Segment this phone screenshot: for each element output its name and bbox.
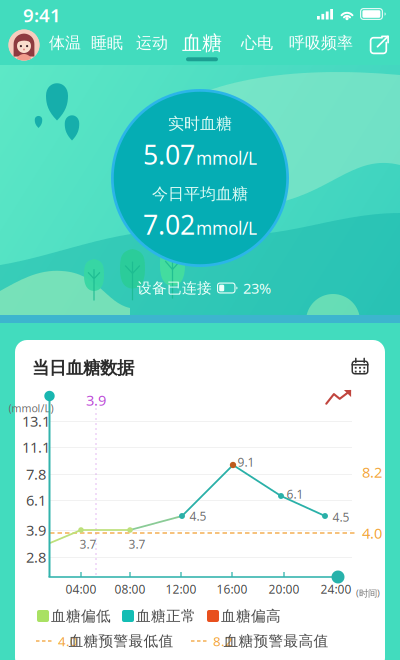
button[interactable]: 心电: [237, 30, 277, 62]
staticText: 运动: [136, 33, 168, 53]
staticText: 4.5: [189, 508, 206, 524]
button[interactable]: Share: [362, 28, 395, 61]
staticText: 血糖正常: [136, 607, 196, 625]
staticText: 3.9: [26, 520, 46, 540]
staticText: 4.0: [362, 523, 382, 543]
staticText: 08:00: [114, 581, 145, 597]
staticText: 20:00: [268, 581, 299, 597]
button[interactable]: 血糖: [178, 30, 226, 62]
staticText: 12:00: [165, 581, 196, 597]
staticText: 血糖预警最低值: [68, 632, 173, 650]
staticText: 设备已连接: [137, 279, 212, 297]
staticText: 24:00: [320, 581, 351, 597]
staticText: 2.8: [26, 547, 46, 567]
button[interactable]: 呼吸频率: [285, 30, 357, 62]
staticText: 04:00: [65, 581, 96, 597]
staticText: 当日血糖数据: [32, 357, 134, 379]
staticText: 23%: [243, 278, 271, 298]
button[interactable]: Profile: [6, 27, 41, 62]
button[interactable]: 睡眠: [87, 30, 127, 62]
staticText: 6.1: [286, 486, 303, 502]
staticText: 9:41: [23, 3, 61, 27]
button[interactable]: 运动: [132, 30, 172, 62]
staticText: 3.7: [79, 536, 96, 552]
button[interactable]: Select date: [344, 350, 375, 381]
staticText: 呼吸频率: [289, 33, 353, 53]
staticText: 8.2: [362, 462, 382, 482]
staticText: 4.5: [332, 509, 349, 525]
staticText: 8.2: [213, 632, 233, 650]
staticText: 睡眠: [91, 33, 123, 53]
staticText: 7.02: [143, 207, 195, 242]
staticText: 体温: [49, 33, 81, 53]
staticText: 3.7: [128, 536, 145, 552]
staticText: 血糖: [182, 31, 222, 55]
staticText: 实时血糖: [168, 114, 232, 134]
staticText: 3.9: [86, 390, 106, 410]
staticText: (时间): [356, 587, 380, 599]
staticText: (mmol/L): [8, 401, 53, 415]
staticText: 血糖预警最高值: [223, 632, 328, 650]
staticText: 血糖偏高: [221, 607, 281, 625]
staticText: 血糖偏低: [51, 607, 111, 625]
staticText: 13.1: [22, 411, 50, 431]
staticText: 7.8: [26, 464, 46, 484]
staticText: 5.07: [143, 137, 195, 172]
staticText: mmol/L: [196, 146, 257, 169]
staticText: 11.1: [22, 437, 50, 457]
staticText: 4.0: [58, 632, 78, 650]
staticText: 9.1: [237, 454, 254, 470]
staticText: 今日平均血糖: [152, 184, 248, 204]
button[interactable]: 体温: [45, 30, 85, 62]
staticText: 6.1: [26, 490, 46, 510]
staticText: 心电: [241, 33, 273, 53]
staticText: mmol/L: [196, 216, 257, 239]
staticText: 16:00: [216, 581, 247, 597]
